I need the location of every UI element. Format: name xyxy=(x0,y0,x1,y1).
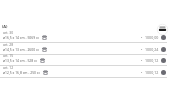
staticText: (A) xyxy=(2,24,8,29)
staticText: ø13,5 x 14 cm - 528 cc xyxy=(3,58,38,63)
staticText: art. 30 xyxy=(3,30,14,35)
staticText: 1000,00 xyxy=(145,35,159,40)
staticText: ø16,5 x 14 cm - 5069 cc xyxy=(3,35,40,40)
staticText: 1000,24 xyxy=(145,47,159,52)
staticText: art. 15 xyxy=(3,53,14,58)
staticText: 1000,12 xyxy=(145,70,159,75)
staticText: • xyxy=(141,35,143,40)
staticText: ø14,5 x 13 cm - 2600 cc xyxy=(3,47,40,52)
button[interactable]: art. 12 xyxy=(0,66,170,78)
staticText: art. 12 xyxy=(3,65,14,70)
staticText: • xyxy=(141,70,143,75)
button[interactable]: art. 28 xyxy=(0,43,170,55)
staticText: • xyxy=(141,58,143,63)
staticText: art. 28 xyxy=(3,42,14,47)
button[interactable]: Options xyxy=(156,23,169,36)
staticText: • xyxy=(141,47,143,52)
button[interactable]: art. 30 xyxy=(0,31,170,43)
staticText: ø12,5 x 16,8 cm - 250 cc xyxy=(3,70,41,75)
button[interactable]: art. 15 xyxy=(0,54,170,66)
staticText: 1000,12 xyxy=(145,58,159,63)
